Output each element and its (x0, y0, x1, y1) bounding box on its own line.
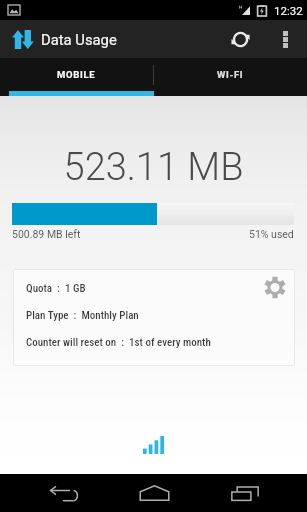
button[interactable]: WI-FI (154, 58, 307, 91)
button[interactable]: Home (114, 474, 194, 512)
staticText: 500.89 MB left (12, 228, 81, 240)
staticText: Quota : 1 GB (26, 282, 86, 295)
button[interactable]: Refresh (214, 20, 266, 58)
button[interactable]: Back (24, 474, 104, 512)
button[interactable]: Recents (205, 474, 285, 512)
button[interactable]: Quota : 1 GB (13, 269, 295, 366)
button[interactable]: MOBILE (0, 58, 153, 91)
staticText: Data Usage (41, 31, 117, 48)
staticText: WI-FI (217, 69, 244, 80)
staticText: Plan Type : Monthly Plan (26, 309, 139, 322)
staticText: 51% used (249, 228, 294, 240)
staticText: 523.11 MB (0, 145, 307, 190)
staticText: MOBILE (57, 69, 96, 80)
staticText: 12:32 (274, 4, 303, 17)
button[interactable]: More options (266, 20, 307, 58)
staticText: Counter will reset on : 1st of every mon… (26, 336, 211, 349)
button[interactable]: Settings (263, 276, 286, 299)
